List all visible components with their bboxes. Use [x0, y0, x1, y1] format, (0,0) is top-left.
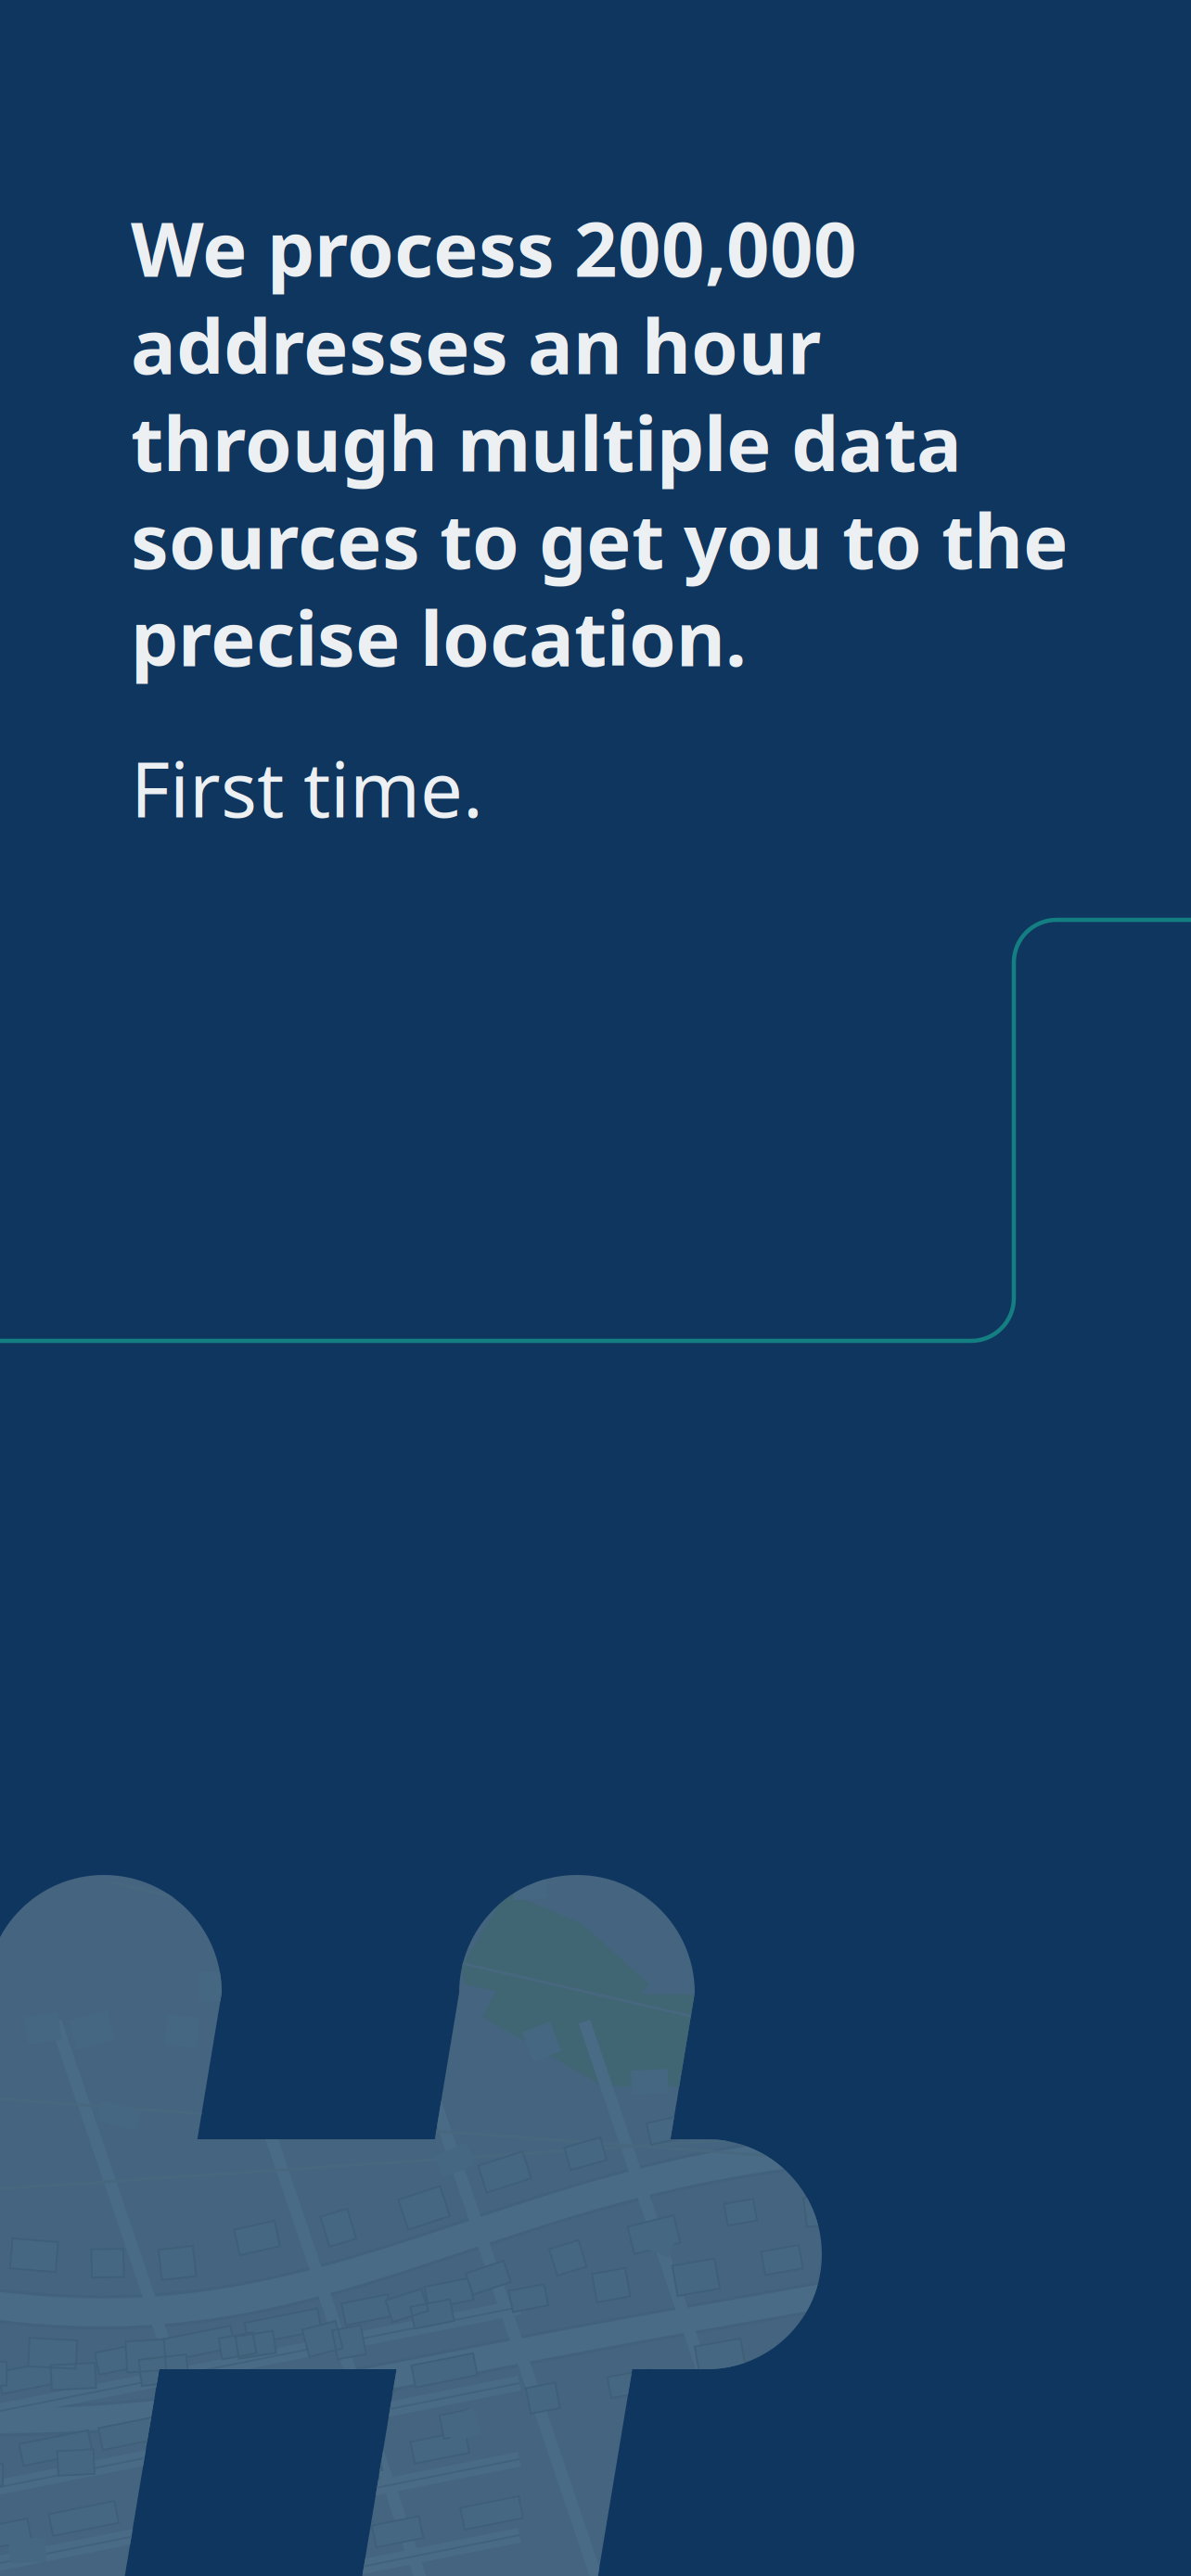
- staticText: We process 200,000 addresses an hour thr…: [131, 198, 1069, 687]
- staticText: First time.: [131, 738, 483, 838]
